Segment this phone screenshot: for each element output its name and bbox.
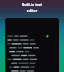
button[interactable]	[5, 18, 59, 72]
staticText: Built-in text editor	[2, 2, 62, 13]
